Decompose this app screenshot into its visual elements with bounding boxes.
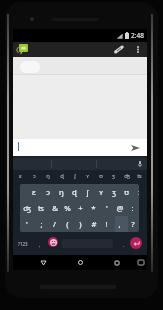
staticText: ʤ: [124, 172, 130, 180]
staticText: ʏ: [86, 172, 89, 180]
button[interactable]: ʊ: [120, 184, 133, 200]
staticText: ŋ: [46, 172, 50, 180]
button[interactable]: ,: [33, 233, 46, 255]
staticText: (: [66, 219, 69, 230]
button[interactable]: %: [61, 200, 74, 216]
button[interactable]: !: [100, 216, 113, 232]
button[interactable]: ɛ: [27, 184, 41, 200]
button[interactable]: :: [126, 200, 139, 216]
button[interactable]: Voice input: [133, 158, 146, 170]
staticText: &: [52, 203, 58, 214]
staticText: ʒ: [112, 172, 115, 180]
staticText: ʃ: [86, 187, 89, 198]
button[interactable]: Send: [128, 139, 142, 156]
button[interactable]: &: [48, 200, 61, 216]
button[interactable]: ;: [34, 216, 48, 232]
button[interactable]: [20, 61, 40, 73]
staticText: ɔ: [46, 187, 50, 198]
button[interactable]: ?123: [15, 233, 31, 255]
staticText: ʒ: [112, 187, 116, 198]
staticText: /: [53, 219, 56, 230]
button[interactable]: ʦ: [133, 169, 146, 182]
button[interactable]: ŋ: [41, 169, 55, 182]
staticText: ,: [39, 241, 41, 248]
staticText: ): [79, 219, 82, 230]
button[interactable]: More options: [132, 42, 143, 57]
button[interactable]: ʤ: [120, 169, 133, 182]
staticText: ʦ: [137, 172, 142, 180]
button[interactable]: ɔ: [27, 169, 41, 182]
button[interactable]: Recent apps: [111, 255, 123, 270]
staticText: ʤ: [23, 203, 31, 214]
staticText: %: [64, 203, 71, 214]
staticText: #: [91, 219, 97, 230]
staticText: +: [78, 203, 83, 214]
button[interactable]: (: [61, 216, 74, 232]
staticText: ɛ: [32, 187, 36, 198]
staticText: ʊ: [124, 187, 129, 198]
button[interactable]: ): [74, 216, 87, 232]
button[interactable]: Attach: [112, 42, 126, 57]
staticText: *: [91, 203, 96, 214]
button[interactable]: Emoji: [48, 237, 58, 247]
button[interactable]: Messaging: [19, 44, 28, 55]
button[interactable]: ɖ: [68, 184, 81, 200]
staticText: @: [116, 203, 124, 214]
button[interactable]: ʒ: [107, 184, 120, 200]
staticText: ʊ: [99, 172, 103, 180]
button[interactable]: Hide keyboard: [136, 255, 146, 270]
button[interactable]: ʦ: [34, 200, 48, 216]
button[interactable]: ': [20, 216, 34, 232]
button[interactable]: .: [118, 233, 130, 255]
button[interactable]: ʤ: [20, 200, 34, 216]
button[interactable]: ʏ: [94, 184, 107, 200]
staticText: ,: [118, 219, 121, 230]
staticText: ?123: [18, 241, 28, 247]
staticText: ɛ: [19, 172, 22, 180]
staticText: 2:48: [131, 31, 144, 40]
button[interactable]: ɖ: [55, 169, 68, 182]
staticText: !: [105, 219, 108, 230]
staticText: ɔ: [33, 172, 36, 180]
staticText: ɖ: [72, 187, 77, 198]
button[interactable]: Back: [37, 255, 49, 270]
button[interactable]: ': [100, 200, 113, 216]
button[interactable]: ɔ: [41, 184, 55, 200]
staticText: :: [131, 203, 134, 214]
button[interactable]: ʊ: [94, 169, 107, 182]
staticText: ʦ: [38, 203, 44, 214]
button[interactable]: ʃ: [81, 184, 94, 200]
staticText: ɖ: [60, 172, 64, 180]
staticText: ɔ: [138, 187, 139, 198]
button[interactable]: ŋ: [55, 184, 68, 200]
staticText: ŋ: [59, 187, 64, 198]
button[interactable]: Home: [74, 255, 86, 270]
button[interactable]: *: [87, 200, 100, 216]
staticText: ʃ: [74, 172, 76, 180]
button[interactable]: ʃ: [68, 169, 81, 182]
staticText: ?: [131, 219, 135, 230]
button[interactable]: ?: [126, 216, 139, 232]
staticText: ;: [40, 219, 43, 230]
button[interactable]: +: [74, 200, 87, 216]
staticText: ': [106, 203, 108, 214]
button[interactable]: /: [48, 216, 61, 232]
button[interactable]: Back: [14, 42, 20, 57]
staticText: .: [123, 241, 125, 248]
staticText: ': [26, 219, 28, 230]
button[interactable]: Enter: [130, 237, 142, 249]
button[interactable]: @: [113, 200, 126, 216]
button[interactable]: ʏ: [81, 169, 94, 182]
staticText: ʏ: [99, 187, 103, 198]
button[interactable]: ,: [113, 216, 126, 232]
button[interactable]: ɔ: [133, 184, 139, 200]
button[interactable]: #: [87, 216, 100, 232]
button[interactable]: ʒ: [107, 169, 120, 182]
button[interactable]: ɛ: [13, 169, 27, 182]
